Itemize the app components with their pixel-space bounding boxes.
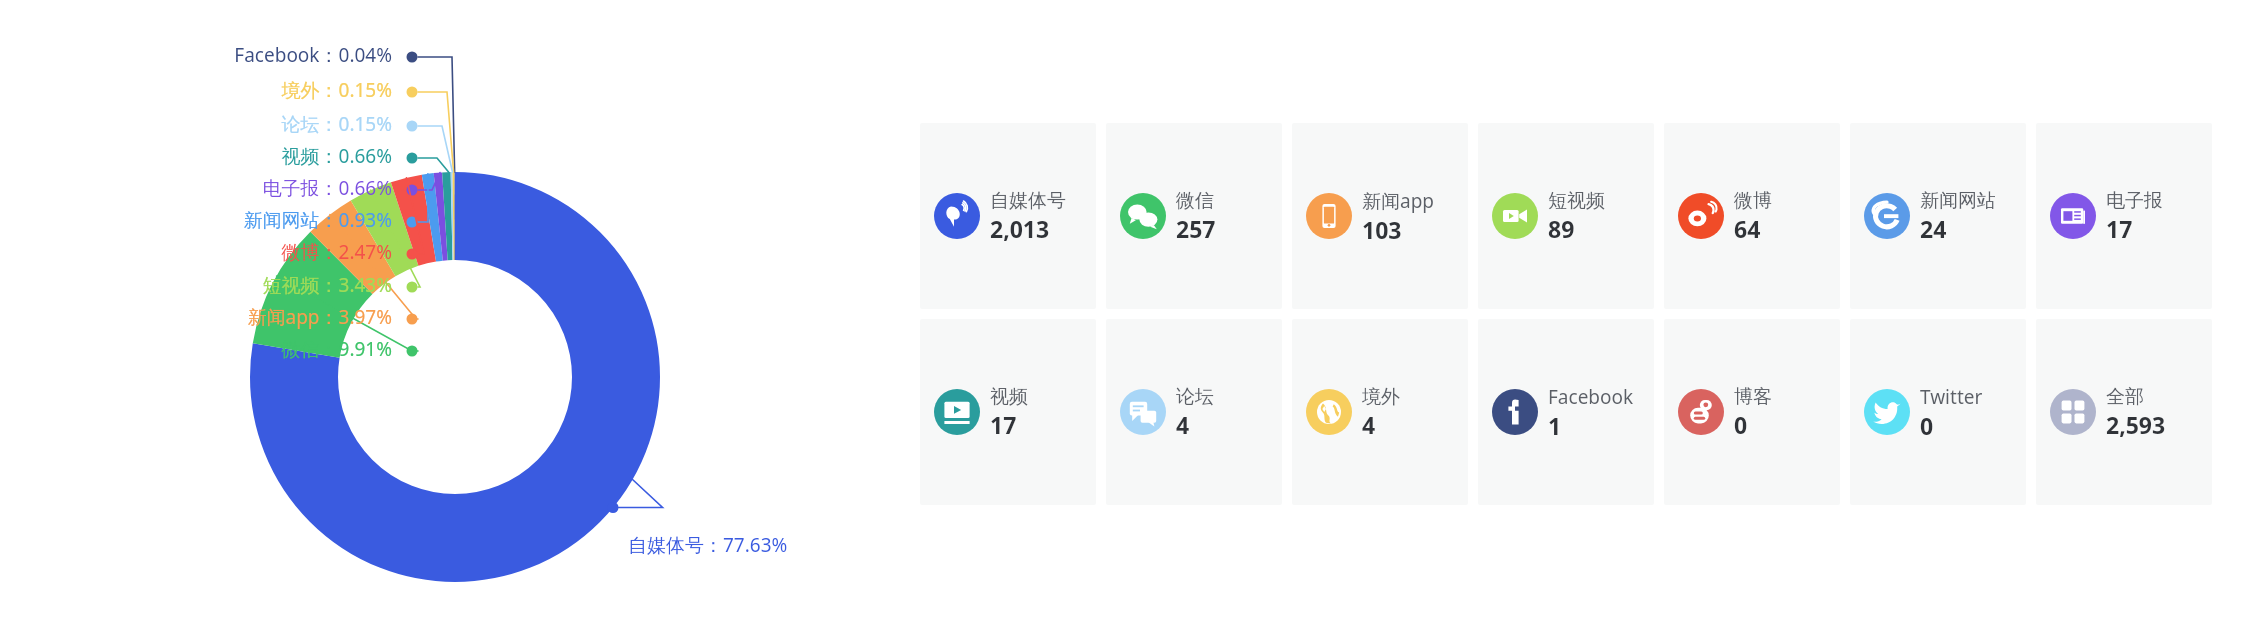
staticText: 89 [1548,213,1575,244]
staticText: 0 [1920,410,1934,441]
staticText: 4 [1176,409,1190,440]
staticText: 64 [1734,213,1761,244]
staticText: 1 [1548,410,1562,441]
button[interactable]: 全部 [2036,319,2212,505]
staticText: 视频 [990,385,1028,409]
staticText: Facebook [1548,384,1634,410]
staticText: 境外 [1362,385,1400,409]
staticText: 博客 [1734,385,1772,409]
staticText: 微博：2.47% [281,239,392,265]
staticText: 短视频：3.43% [262,272,392,298]
button[interactable]: 微博 [1664,123,1840,309]
staticText: 103 [1362,214,1402,245]
staticText: 论坛 [1176,385,1214,409]
button[interactable]: 博客 [1664,319,1840,505]
button[interactable]: 自媒体号 [920,123,1096,309]
staticText: Twitter [1920,384,1983,410]
button[interactable]: 短视频 [1478,123,1654,309]
staticText: Facebook：0.04% [234,42,392,68]
button[interactable]: 论坛 [1106,319,1282,505]
staticText: 境外：0.15% [281,77,392,103]
button[interactable]: 新闻app [1292,123,1468,309]
button[interactable]: Facebook [1478,319,1654,505]
button[interactable]: 视频 [920,319,1096,505]
staticText: 自媒体号：77.63% [628,532,788,558]
staticText: 257 [1176,213,1216,244]
staticText: 微信：9.91% [281,336,392,362]
staticText: 自媒体号 [990,189,1066,213]
staticText: 微信 [1176,189,1214,213]
staticText: 微博 [1734,189,1772,213]
staticText: 24 [1920,213,1947,244]
staticText: 2,593 [2106,409,2166,440]
button[interactable]: 新闻网站 [1850,123,2026,309]
staticText: 17 [990,409,1017,440]
staticText: 2,013 [990,213,1050,244]
staticText: 4 [1362,409,1376,440]
staticText: 论坛：0.15% [281,111,392,137]
staticText: 新闻app：3.97% [247,304,392,330]
staticText: 17 [2106,213,2133,244]
staticText: 新闻网站：0.93% [243,207,392,233]
staticText: 电子报 [2106,189,2163,213]
button[interactable]: Twitter [1850,319,2026,505]
staticText: 0 [1734,409,1748,440]
staticText: 新闻app [1362,188,1435,214]
button[interactable]: 电子报 [2036,123,2212,309]
staticText: 新闻网站 [1920,189,1996,213]
staticText: 短视频 [1548,189,1605,213]
staticText: 视频：0.66% [281,143,392,169]
button[interactable]: 境外 [1292,319,1468,505]
staticText: 电子报：0.66% [262,175,392,201]
button[interactable]: 微信 [1106,123,1282,309]
staticText: 全部 [2106,385,2144,409]
